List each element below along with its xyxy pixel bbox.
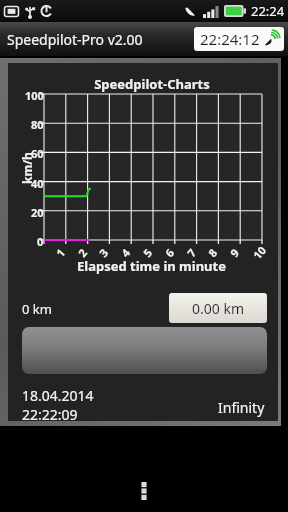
button[interactable]: 22:24:12 — [194, 27, 284, 51]
staticText: 100 — [25, 88, 44, 103]
staticText: Speedpilot-Charts — [94, 75, 210, 93]
staticText: 60 — [31, 146, 44, 161]
other: GPS status — [264, 32, 278, 46]
staticText: 0.00 km — [192, 299, 244, 318]
staticText: 0 km — [22, 300, 52, 318]
staticText: 0 — [37, 234, 44, 249]
button[interactable]: 0.00 km — [169, 293, 267, 323]
staticText: 18.04.2014 — [22, 386, 94, 405]
staticText: 9 — [226, 245, 242, 260]
staticText: 1 — [52, 245, 68, 260]
staticText: 7 — [183, 245, 199, 260]
staticText: 4 — [117, 245, 133, 260]
staticText: Elapsed time in minute — [77, 257, 226, 275]
staticText: 22:24:12 — [200, 29, 260, 49]
staticText: 20 — [31, 205, 44, 220]
staticText: 3 — [95, 245, 111, 260]
staticText: km/h — [19, 152, 35, 184]
staticText: 2 — [74, 245, 90, 260]
staticText: Infinity — [218, 398, 265, 417]
staticText: 6 — [161, 245, 177, 260]
staticText: 10 — [250, 243, 269, 262]
staticText: 22:22:09 — [22, 405, 78, 421]
staticText: 80 — [31, 117, 44, 132]
staticText: 22:24 — [251, 2, 285, 20]
staticText: Speedpilot-Pro v2.00 — [7, 30, 143, 49]
staticText: 8 — [204, 245, 220, 260]
button[interactable]: More options — [0, 470, 288, 512]
button[interactable]: Speed display — [22, 327, 267, 374]
staticText: 5 — [139, 245, 155, 260]
staticText: 40 — [31, 176, 44, 191]
